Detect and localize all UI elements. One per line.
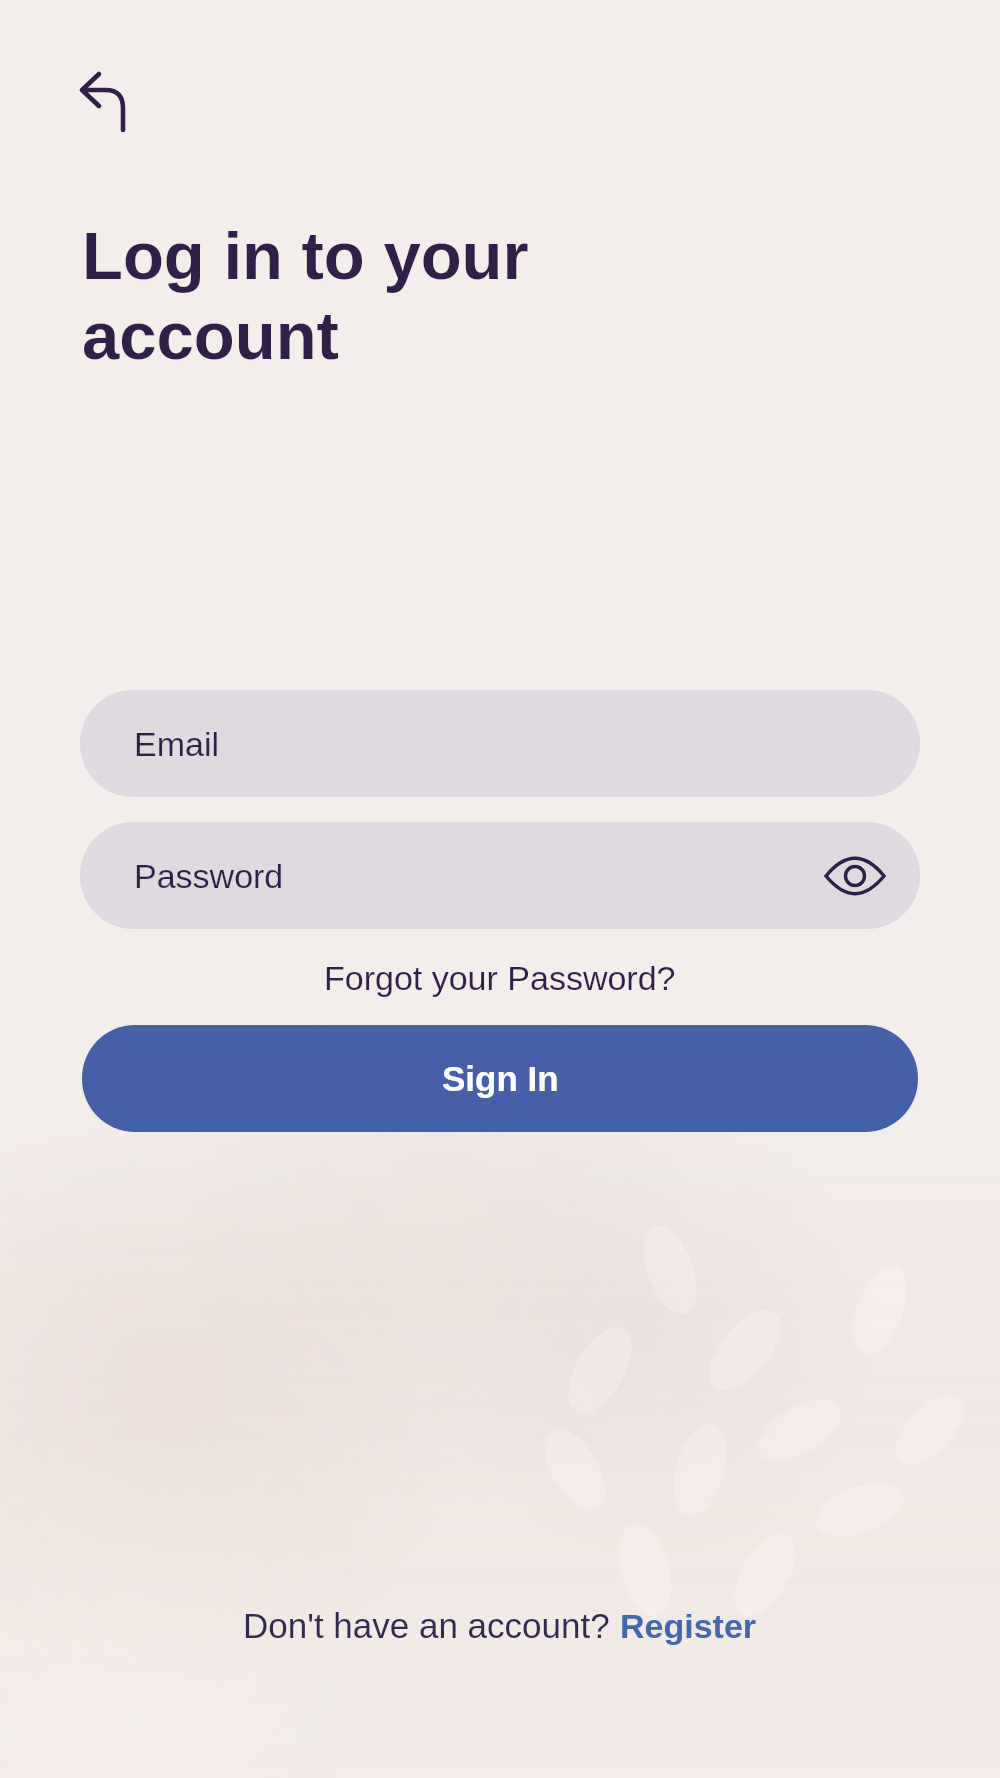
staticText: Password [134,857,284,895]
button[interactable]: Password [80,822,920,929]
staticText: Sign In [442,1059,559,1098]
staticText: Log in to your account [82,218,529,373]
button[interactable]: Forgot your Password? [324,959,676,997]
staticText: Don't have an account? [243,1606,620,1645]
button[interactable] [70,58,136,142]
button[interactable]: Sign In [82,1025,918,1132]
button[interactable]: Email [80,690,920,797]
staticText: Email [134,725,220,763]
button[interactable]: Register [620,1607,757,1645]
